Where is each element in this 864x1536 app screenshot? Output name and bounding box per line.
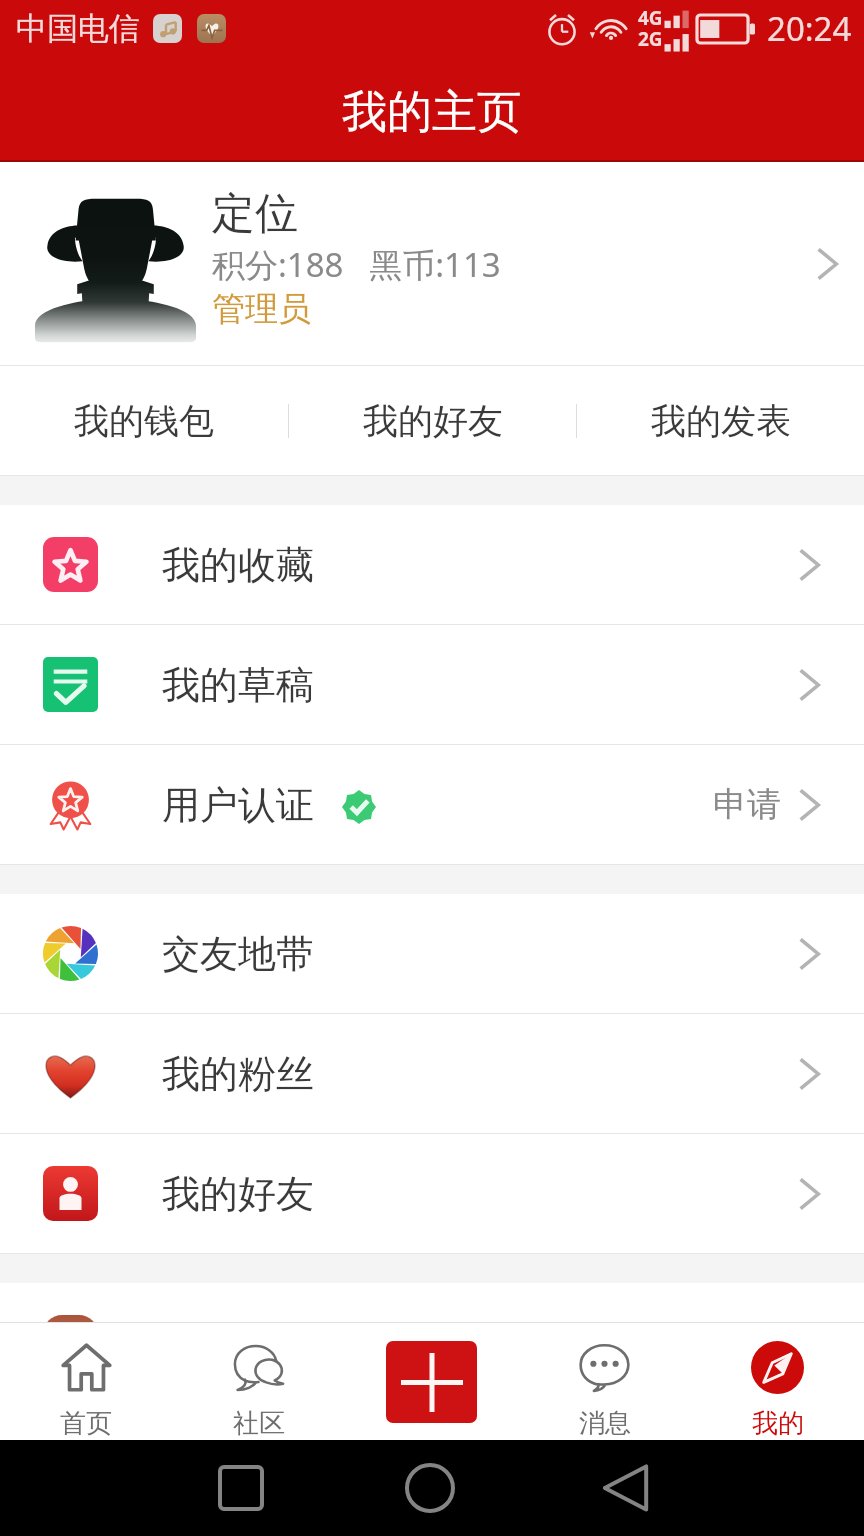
staticText: 2G <box>638 26 663 52</box>
other: Recent apps <box>218 1465 264 1511</box>
staticText: 我的钱包 <box>74 399 214 443</box>
staticText: 定位 <box>212 187 298 241</box>
staticText: 社区 <box>233 1407 285 1440</box>
staticText: 我的发表 <box>651 399 791 443</box>
button[interactable]: 我的好友 <box>289 366 576 475</box>
button[interactable]: 首页 <box>0 1323 172 1440</box>
staticText: 20:24 <box>767 6 852 51</box>
button[interactable]: 我的草稿 <box>0 625 864 744</box>
staticText: 管理员 <box>212 288 311 330</box>
staticText: 消息 <box>579 1407 631 1440</box>
staticText: 申请 <box>713 783 781 826</box>
button[interactable]: 社区 <box>172 1323 345 1440</box>
other: Home <box>405 1463 455 1513</box>
staticText: 中国电信 <box>16 9 140 48</box>
button[interactable]: 定位 <box>0 162 864 365</box>
button[interactable]: 我的 <box>691 1323 864 1440</box>
staticText: 积分:188 黑币:113 <box>212 242 501 287</box>
button[interactable]: 我的好友 <box>0 1134 864 1253</box>
button[interactable]: 交友地带 <box>0 894 864 1013</box>
staticText: 首页 <box>60 1407 112 1440</box>
staticText: 我的草稿 <box>162 661 314 709</box>
button[interactable]: 我的收藏 <box>0 505 864 624</box>
staticText: 我的好友 <box>363 399 503 443</box>
button[interactable] <box>0 1283 864 1321</box>
button[interactable]: 我的钱包 <box>0 366 288 475</box>
staticText: 我的主页 <box>342 84 522 141</box>
button[interactable]: 消息 <box>518 1323 691 1440</box>
staticText: 我的粉丝 <box>162 1050 314 1098</box>
staticText: 我的好友 <box>162 1170 314 1218</box>
staticText: 我的收藏 <box>162 541 314 589</box>
staticText: 用户认证 <box>162 781 314 829</box>
button[interactable]: 我的粉丝 <box>0 1014 864 1133</box>
staticText: 我的 <box>752 1407 804 1440</box>
staticText: 4G <box>638 5 663 31</box>
button[interactable]: 用户认证 <box>0 745 864 864</box>
button[interactable]: 我的发表 <box>577 366 864 475</box>
other: Back <box>602 1464 649 1512</box>
staticText: 交友地带 <box>162 930 314 978</box>
button[interactable]: Add post <box>345 1323 518 1440</box>
